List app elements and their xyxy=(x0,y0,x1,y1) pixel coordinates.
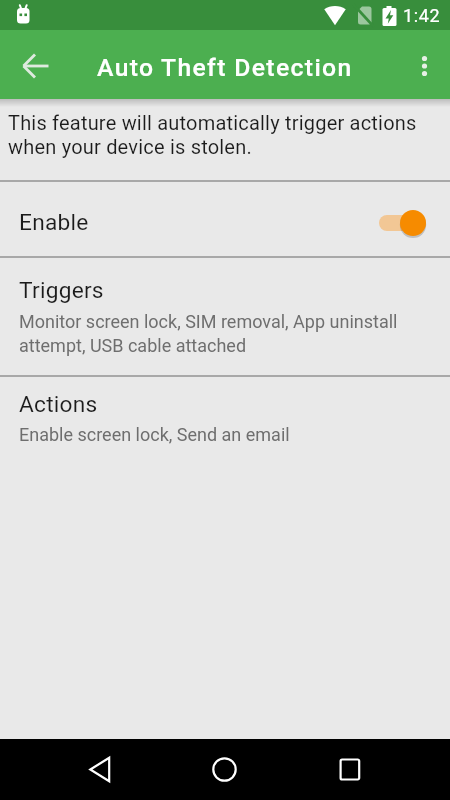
staticText: Triggers xyxy=(19,277,104,304)
button[interactable] xyxy=(402,41,450,89)
button[interactable]: Enable xyxy=(0,182,450,256)
button[interactable] xyxy=(300,739,450,800)
staticText: This feature will automatically trigger … xyxy=(8,111,417,159)
button[interactable]: Actions xyxy=(0,377,450,465)
staticText: Enable xyxy=(19,209,89,236)
staticText: Enable screen lock, Send an email xyxy=(19,424,290,445)
button[interactable]: Triggers xyxy=(0,258,450,375)
staticText: Monitor screen lock, SIM removal, App un… xyxy=(19,311,398,356)
staticText: Auto Theft Detection xyxy=(97,53,353,82)
button[interactable] xyxy=(150,739,300,800)
button[interactable] xyxy=(0,739,150,800)
staticText: 1:42 xyxy=(403,5,441,26)
staticText: Actions xyxy=(19,391,98,418)
button[interactable] xyxy=(379,209,426,237)
button[interactable] xyxy=(0,35,60,95)
